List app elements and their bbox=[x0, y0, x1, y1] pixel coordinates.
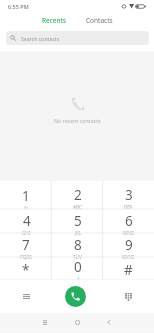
staticText: WXYZ bbox=[122, 254, 135, 260]
button[interactable]: Back bbox=[99, 313, 119, 332]
staticText: 1 bbox=[22, 187, 30, 205]
staticText: # bbox=[124, 261, 133, 279]
button[interactable]: 7 bbox=[0, 233, 52, 257]
staticText: Search contacts bbox=[21, 35, 60, 42]
staticText: GHI bbox=[22, 230, 31, 236]
button[interactable]: Contacts bbox=[76, 13, 123, 30]
button[interactable]: 9 bbox=[103, 233, 154, 257]
button[interactable]: Search contacts bbox=[6, 31, 149, 45]
button[interactable]: 1 bbox=[0, 181, 52, 209]
staticText: + bbox=[77, 276, 80, 281]
button[interactable]: Dialpad bbox=[103, 280, 154, 313]
button[interactable]: Home bbox=[67, 313, 87, 332]
button[interactable]: Recents bbox=[32, 13, 76, 30]
staticText: 6 bbox=[125, 212, 133, 230]
button[interactable]: 5 bbox=[52, 209, 103, 233]
button[interactable]: 3 bbox=[103, 181, 154, 209]
staticText: No recent contacts bbox=[54, 117, 101, 124]
staticText: 0 bbox=[74, 258, 82, 276]
staticText: Contacts bbox=[86, 16, 113, 25]
staticText: ABC bbox=[73, 204, 82, 210]
staticText: JKL bbox=[75, 230, 82, 236]
staticText: 2 bbox=[74, 186, 82, 204]
button[interactable]: 0 bbox=[52, 257, 103, 280]
staticText: 7 bbox=[22, 236, 30, 254]
button[interactable]: 2 bbox=[52, 181, 103, 209]
staticText: TUV bbox=[73, 254, 82, 260]
button[interactable]: # bbox=[103, 257, 154, 280]
staticText: 6:55 PM bbox=[8, 3, 29, 10]
button[interactable]: Recent apps bbox=[35, 313, 55, 332]
staticText: 8 bbox=[74, 236, 82, 254]
button[interactable]: Call log bbox=[0, 280, 52, 313]
button[interactable]: * bbox=[0, 257, 52, 280]
staticText: 4 bbox=[23, 212, 31, 230]
staticText: MNO bbox=[123, 230, 135, 236]
staticText: ∞ bbox=[24, 205, 28, 210]
button[interactable]: Call bbox=[65, 286, 86, 307]
staticText: PQRS bbox=[20, 254, 32, 260]
staticText: DEF bbox=[124, 204, 133, 210]
staticText: * bbox=[22, 261, 30, 279]
staticText: 9 bbox=[125, 236, 133, 254]
button[interactable]: 6 bbox=[103, 209, 154, 233]
button[interactable]: 4 bbox=[0, 209, 52, 233]
staticText: Recents bbox=[42, 16, 66, 25]
button[interactable]: 8 bbox=[52, 233, 103, 257]
staticText: 3 bbox=[125, 186, 133, 204]
staticText: 5 bbox=[74, 212, 82, 230]
